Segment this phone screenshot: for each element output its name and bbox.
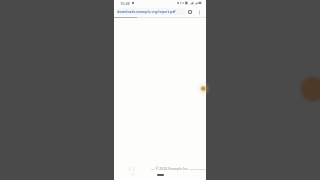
staticText: — © 2020 Example Inc ————— — [151, 166, 207, 171]
button[interactable]: Tabs — [187, 9, 193, 15]
staticText: downloads.example.org/report.pdf — [117, 9, 176, 14]
button[interactable]: More options — [196, 9, 202, 15]
staticText: 10:48 — [120, 1, 130, 6]
button[interactable]: downloads.example.org/report.pdf — [116, 8, 186, 15]
